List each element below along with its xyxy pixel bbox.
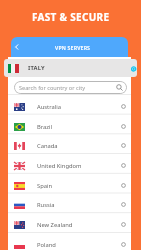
staticText: VPN SERVERS bbox=[55, 44, 91, 51]
button[interactable]: Poland bbox=[8, 237, 131, 250]
button[interactable]: Brazil bbox=[8, 119, 131, 134]
staticText: United Kingdom bbox=[37, 162, 82, 170]
button[interactable]: Canada bbox=[8, 138, 131, 153]
staticText: Poland bbox=[37, 241, 56, 249]
button[interactable]: Australia bbox=[8, 99, 131, 114]
staticText: ITALY bbox=[28, 64, 45, 72]
staticText: Search for country or city bbox=[19, 84, 86, 92]
staticText: FAST & SECURE bbox=[32, 10, 110, 24]
staticText: Canada bbox=[37, 142, 58, 150]
button[interactable]: United Kingdom bbox=[8, 158, 131, 173]
button[interactable]: ITALY bbox=[4, 59, 137, 77]
button[interactable]: Back bbox=[11, 37, 22, 57]
staticText: Spain bbox=[37, 182, 53, 190]
staticText: Australia bbox=[37, 103, 61, 111]
button[interactable]: Russia bbox=[8, 197, 131, 212]
button[interactable]: Spain bbox=[8, 178, 131, 193]
staticText: Russia bbox=[37, 201, 55, 209]
button[interactable]: Search for country or city bbox=[14, 81, 127, 94]
staticText: New Zealand bbox=[37, 221, 73, 229]
staticText: Brazil bbox=[37, 123, 53, 131]
button[interactable]: New Zealand bbox=[8, 217, 131, 232]
